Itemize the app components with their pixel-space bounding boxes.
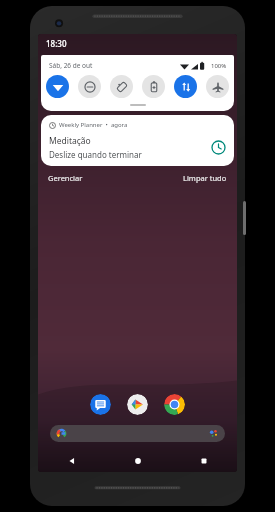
button[interactable]: Messages — [90, 394, 111, 415]
button[interactable]: Gerenciar — [48, 170, 83, 186]
button[interactable]: Do not disturb — [78, 75, 101, 98]
button[interactable]: Wi-Fi — [46, 75, 69, 98]
button[interactable]: Weekly Planner • agora — [41, 115, 234, 166]
staticText: Deslize quando terminar — [49, 149, 142, 160]
button[interactable]: Chrome — [164, 394, 185, 415]
staticText: Limpar tudo — [183, 173, 227, 183]
button[interactable]: Auto rotate — [110, 75, 133, 98]
button[interactable]: Recent apps — [171, 450, 237, 472]
staticText: Gerenciar — [48, 173, 83, 183]
button[interactable]: Mobile data — [174, 75, 197, 98]
button[interactable] — [50, 425, 225, 442]
button[interactable]: Home — [105, 450, 171, 472]
staticText: Meditação — [49, 135, 91, 147]
staticText: 18:30 — [46, 38, 67, 49]
staticText: Sáb, 26 de out — [49, 61, 93, 70]
button[interactable]: Airplane mode — [206, 75, 229, 98]
button[interactable]: Back — [38, 450, 105, 472]
button[interactable]: Play Store — [127, 394, 148, 415]
staticText: Weekly Planner • agora — [59, 121, 128, 129]
button[interactable]: Limpar tudo — [183, 170, 227, 186]
staticText: 100% — [211, 62, 227, 70]
button[interactable]: Battery saver — [142, 75, 165, 98]
